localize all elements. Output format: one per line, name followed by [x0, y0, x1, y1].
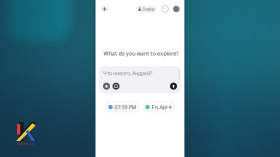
button[interactable]: Pick a date	[143, 102, 174, 112]
staticText: Deploy	[142, 6, 154, 12]
button[interactable]: Send	[170, 83, 177, 90]
staticText: Что нового, Андрей?	[103, 70, 152, 77]
staticText: brandstudio	[16, 142, 34, 146]
button[interactable]: Pick a time	[106, 102, 139, 112]
button[interactable]: Account	[173, 6, 179, 12]
staticText: 07:39 PM	[115, 104, 137, 111]
staticText: Fri, Apr 4	[152, 104, 172, 111]
staticText: What do you want to explore?	[103, 50, 178, 57]
button[interactable]: Deploy	[136, 5, 157, 13]
button[interactable]: Camera	[112, 83, 119, 90]
button[interactable]: Apps	[103, 83, 110, 90]
button[interactable]: New chat	[100, 5, 108, 13]
button[interactable]: History	[162, 5, 169, 12]
